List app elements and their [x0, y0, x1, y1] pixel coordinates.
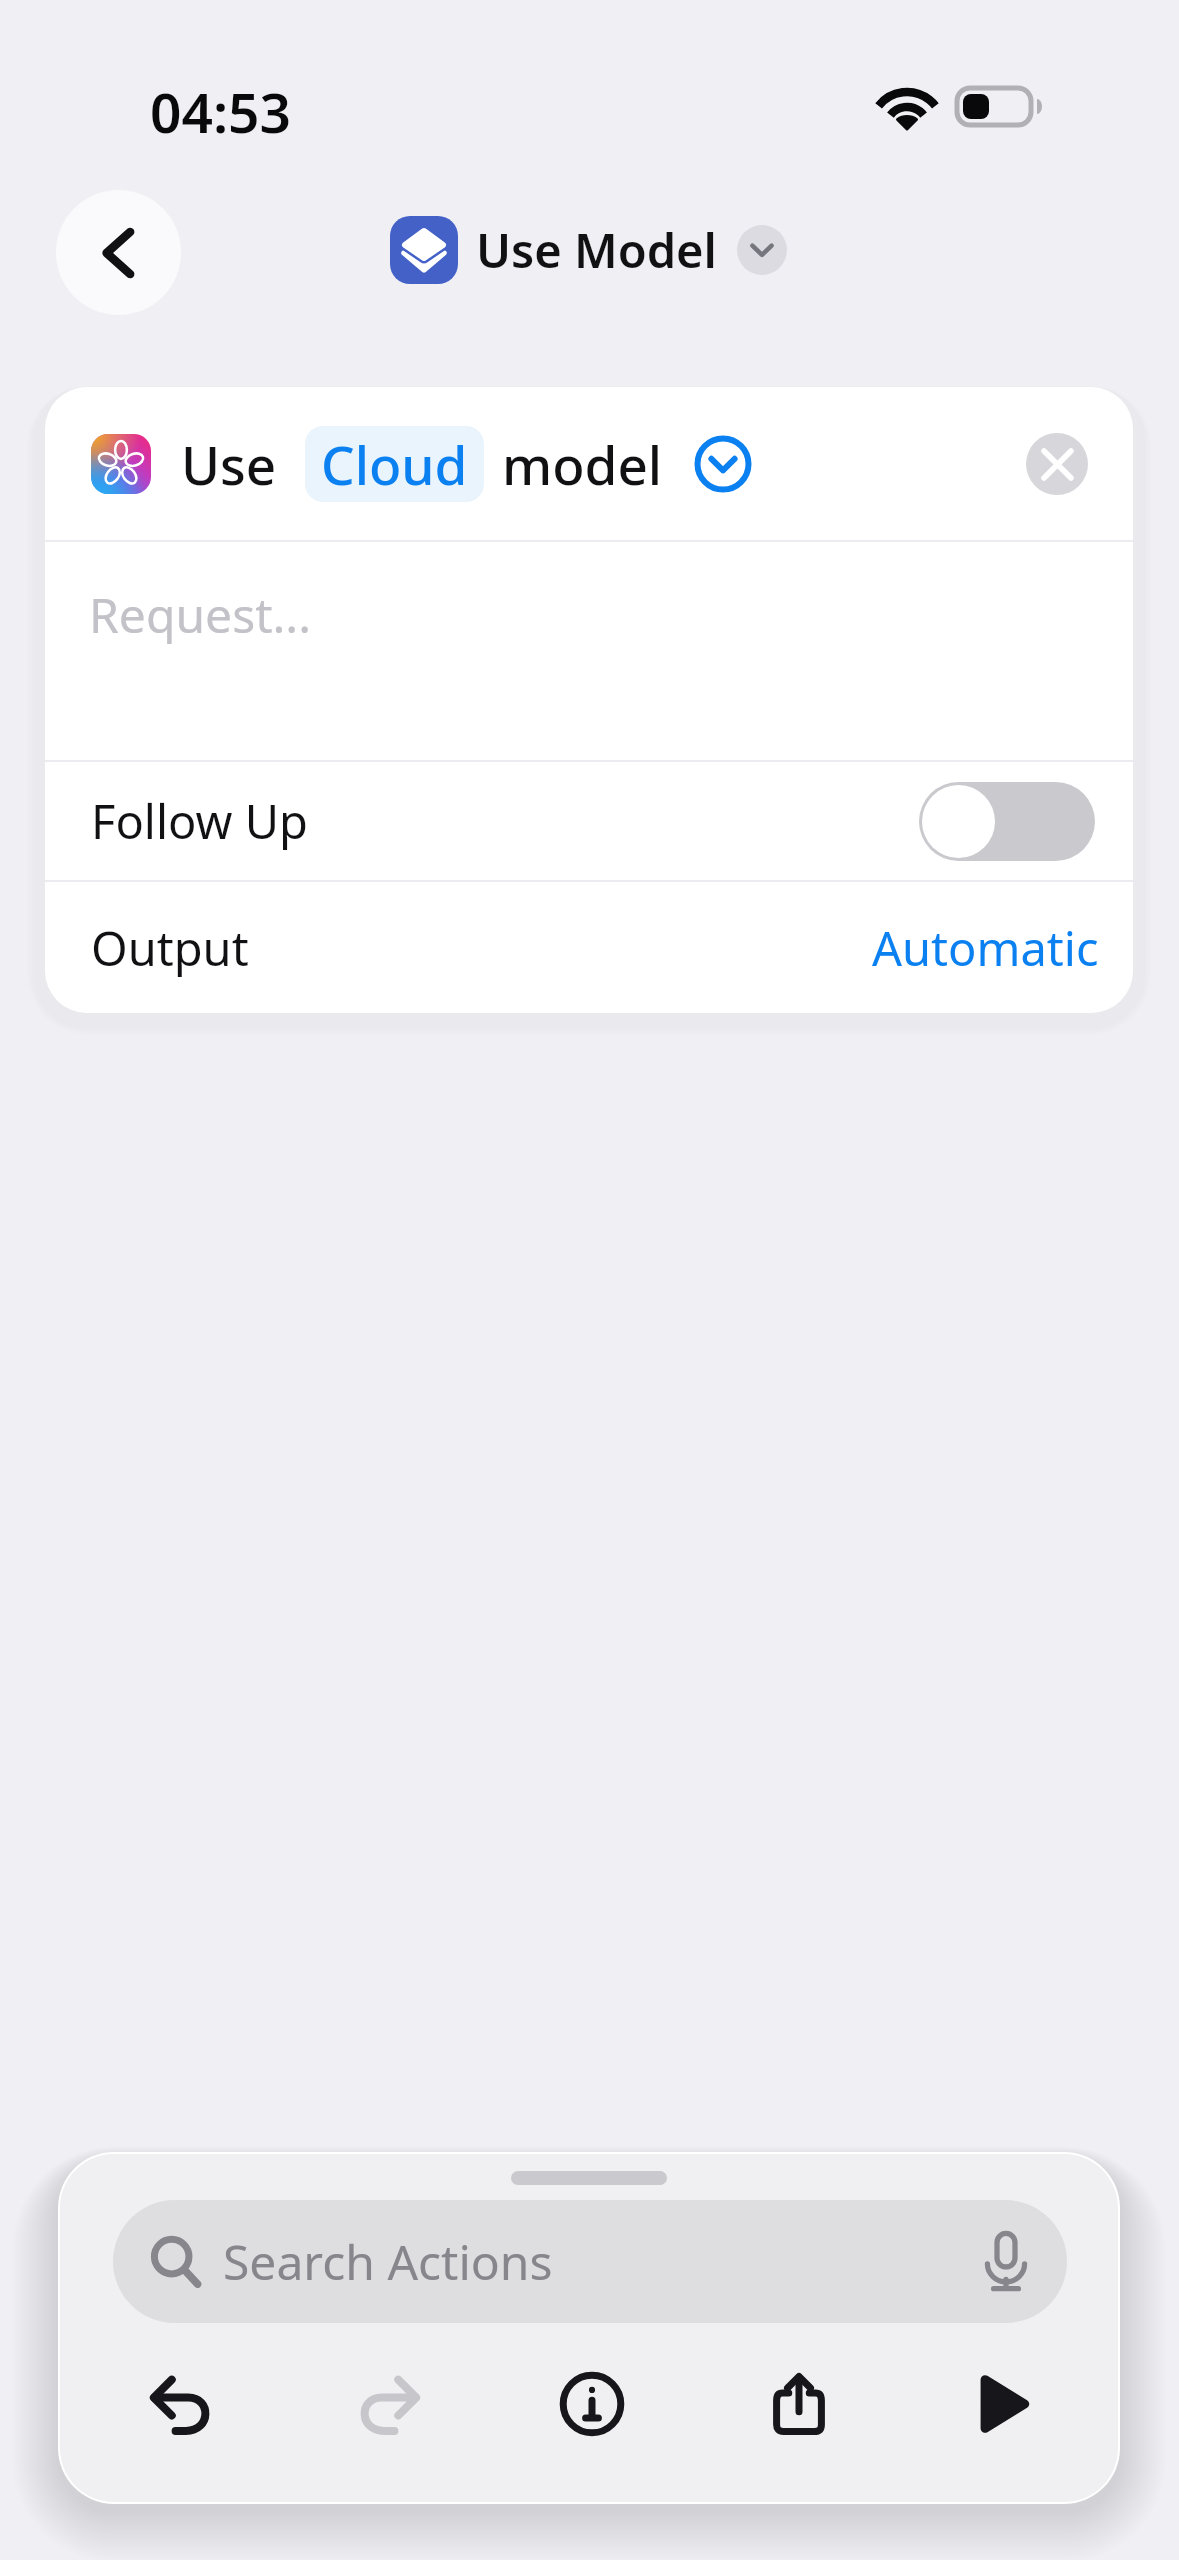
button[interactable]: Cloud	[305, 426, 484, 502]
button[interactable]: Search Actions	[113, 2200, 1067, 2323]
button[interactable]: Show more	[737, 225, 787, 275]
button[interactable]: Use	[45, 387, 1133, 540]
button[interactable]: Remove action	[1026, 433, 1088, 495]
staticText: Cloud	[321, 428, 468, 500]
button[interactable]: Output	[45, 882, 1133, 1013]
staticText: Automatic	[872, 916, 1099, 980]
button[interactable]: Undo	[120, 2344, 244, 2464]
button[interactable]: Follow Up	[45, 762, 1133, 880]
staticText: model	[502, 428, 663, 500]
staticText: Use	[181, 428, 277, 500]
button[interactable]	[919, 782, 1095, 861]
button[interactable]: Expand	[693, 434, 753, 494]
staticText: Request...	[89, 582, 312, 647]
button[interactable]: Use Model	[390, 216, 787, 284]
button[interactable]: Run	[941, 2344, 1065, 2464]
staticText: Use Model	[476, 218, 717, 282]
staticText: Search Actions	[223, 2229, 553, 2294]
button[interactable]: Back	[56, 190, 181, 315]
staticText: Follow Up	[91, 789, 308, 853]
button[interactable]: Details	[530, 2344, 654, 2464]
button[interactable]: Redo	[326, 2344, 450, 2464]
button[interactable]: Share	[737, 2344, 861, 2464]
button[interactable]: Request...	[45, 542, 1133, 760]
staticText: 04:53	[150, 74, 292, 149]
staticText: Output	[91, 916, 249, 980]
